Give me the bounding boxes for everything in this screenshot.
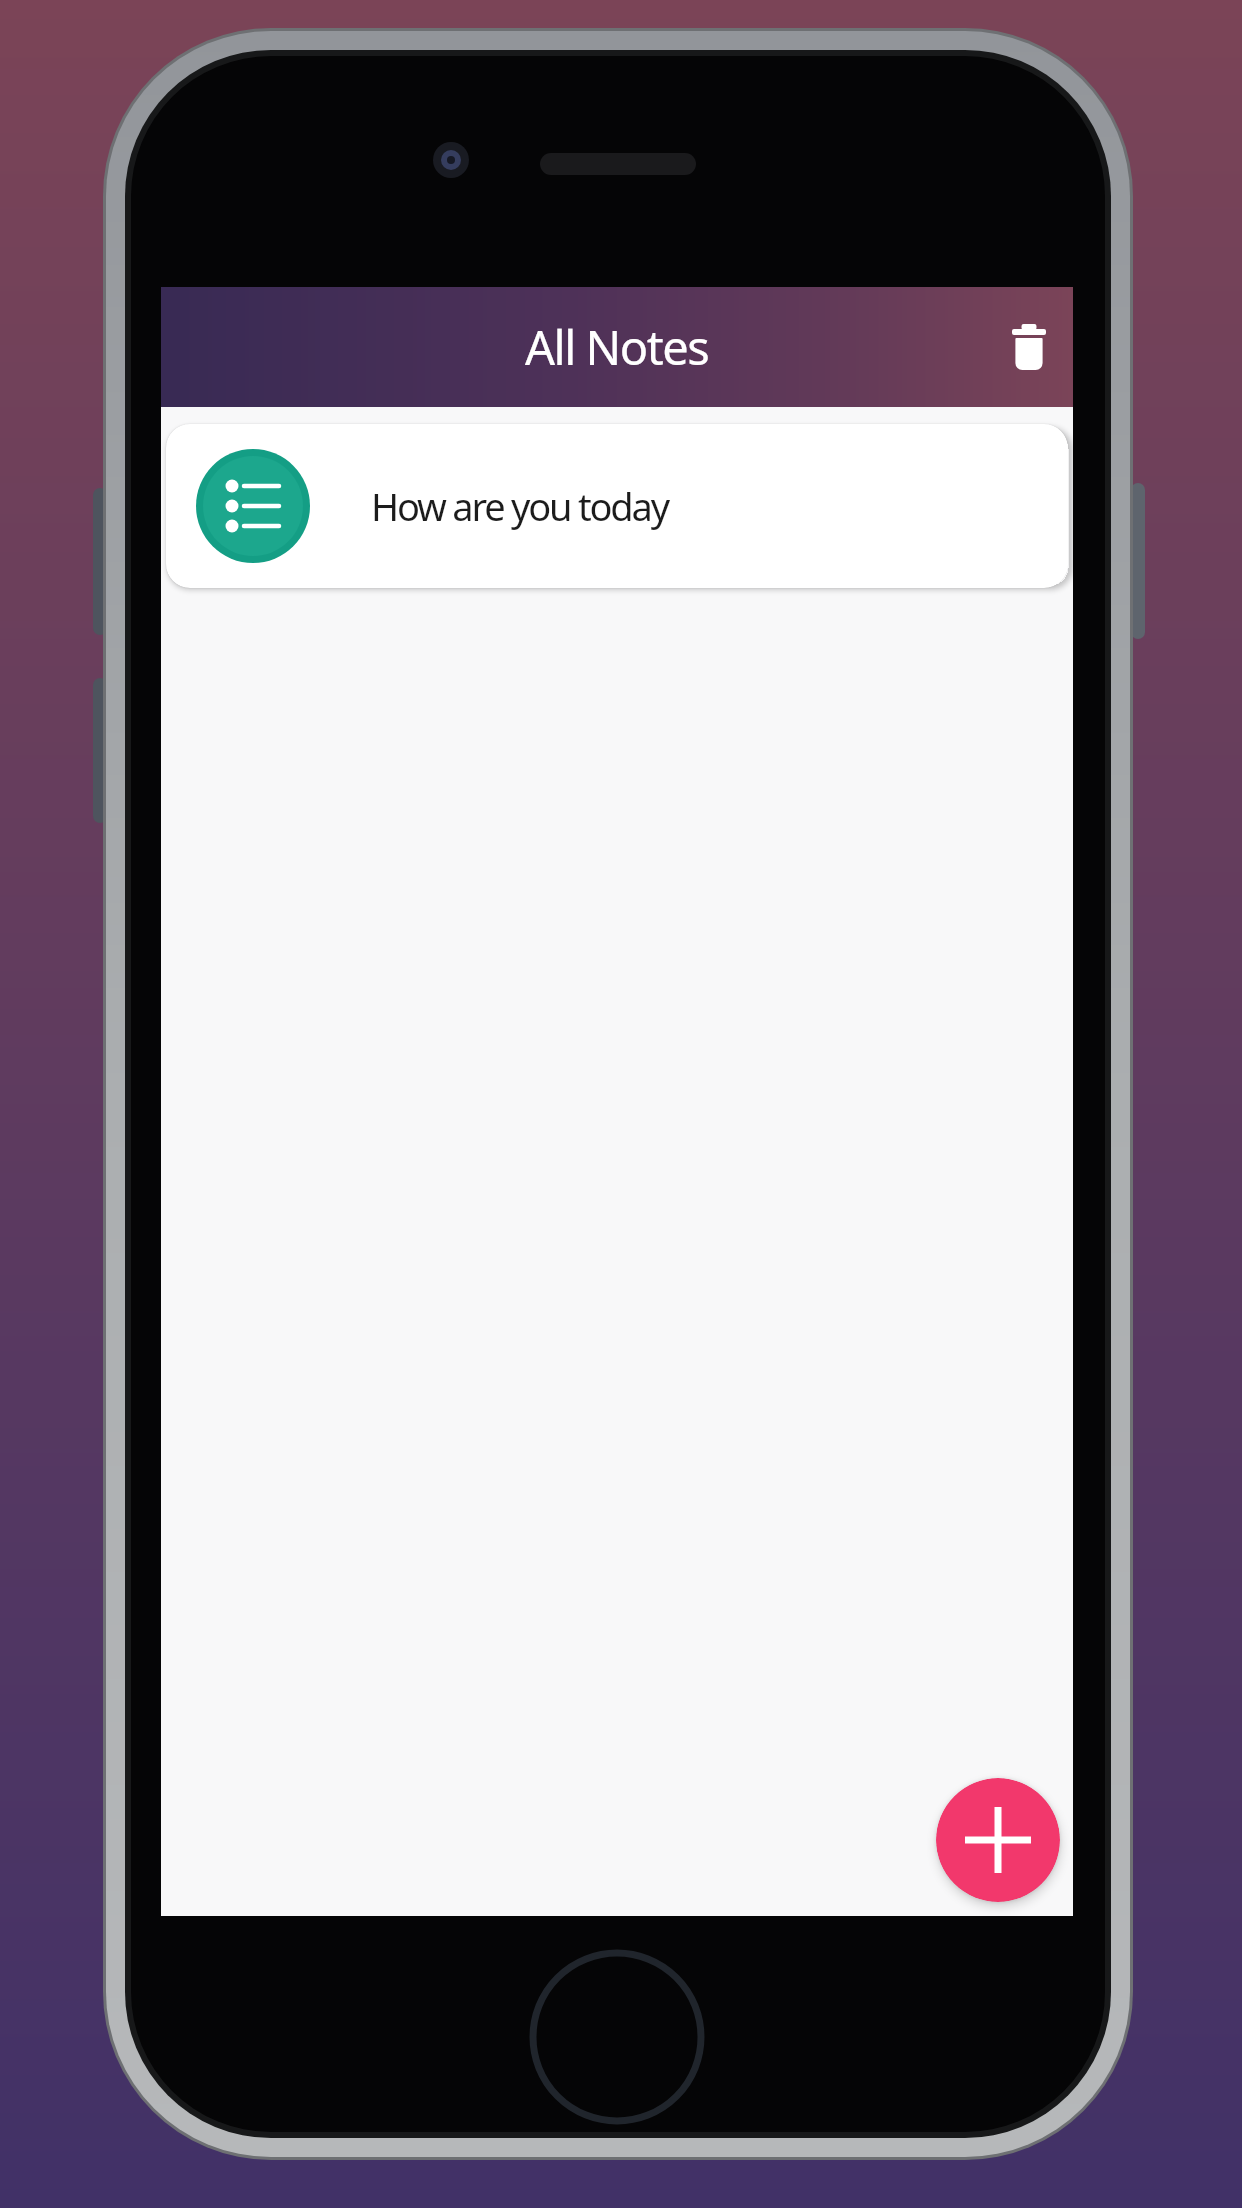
staticText: All Notes — [525, 315, 709, 379]
button[interactable] — [936, 1778, 1060, 1902]
button[interactable]: How are you today — [166, 424, 1068, 588]
button[interactable] — [993, 311, 1065, 383]
staticText: How are you today — [371, 480, 668, 532]
